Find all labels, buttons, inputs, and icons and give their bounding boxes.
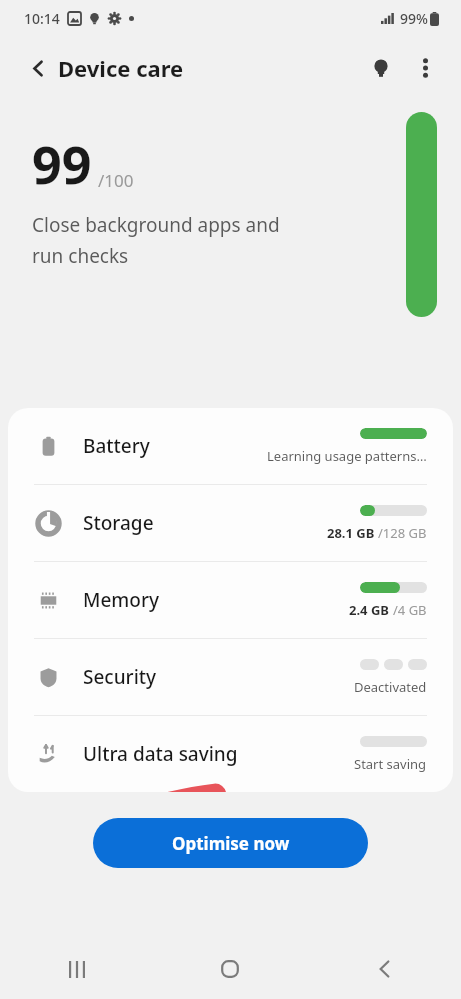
- button[interactable]: Memory: [8, 562, 453, 638]
- staticText: Storage: [83, 510, 154, 536]
- button[interactable]: More options: [403, 46, 447, 90]
- button[interactable]: Storage: [8, 485, 453, 561]
- button[interactable]: Ultra data saving: [8, 716, 453, 792]
- button[interactable]: Home: [153, 939, 307, 999]
- staticText: 99%: [400, 9, 428, 28]
- staticText: Security: [83, 664, 157, 690]
- button[interactable]: Recent apps: [0, 939, 153, 999]
- staticText: Battery: [83, 433, 150, 459]
- staticText: 2.4 GB: [349, 601, 393, 619]
- button[interactable]: Tips: [359, 46, 403, 90]
- staticText: Close background apps and: [32, 212, 280, 238]
- staticText: 10:14: [24, 9, 60, 28]
- staticText: Start saving: [354, 755, 427, 773]
- button[interactable]: Back: [307, 939, 461, 999]
- staticText: Learning usage patterns…: [267, 447, 427, 465]
- button[interactable]: Optimise now: [93, 818, 368, 868]
- staticText: Optimise now: [172, 832, 290, 855]
- button[interactable]: Battery: [8, 408, 453, 484]
- staticText: 28.1 GB: [327, 524, 378, 542]
- staticText: Memory: [83, 587, 160, 613]
- button[interactable]: Security: [8, 639, 453, 715]
- staticText: /128 GB: [378, 524, 427, 542]
- staticText: /100: [98, 169, 134, 192]
- staticText: 99: [32, 128, 92, 199]
- staticText: /4 GB: [393, 601, 427, 619]
- button[interactable]: Back: [18, 48, 58, 88]
- staticText: Device care: [58, 53, 184, 83]
- staticText: Ultra data saving: [83, 741, 238, 767]
- staticText: run checks: [32, 243, 129, 269]
- staticText: Deactivated: [354, 678, 427, 696]
